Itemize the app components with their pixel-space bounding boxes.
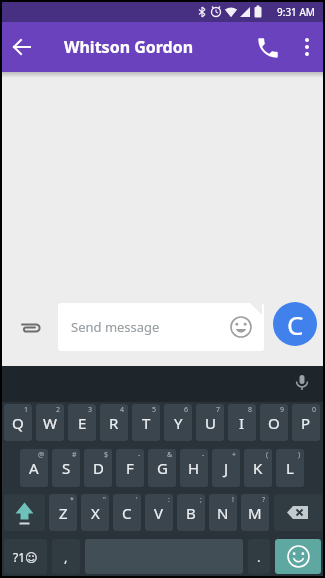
- staticText: 5: [152, 405, 157, 415]
- staticText: 1: [24, 405, 29, 415]
- button[interactable]: [293, 32, 321, 62]
- staticText: #: [72, 450, 77, 460]
- button[interactable]: S: [52, 449, 80, 487]
- staticText: (: [266, 450, 269, 460]
- button[interactable]: U: [196, 404, 224, 441]
- staticText: I: [239, 413, 245, 433]
- button[interactable]: R: [100, 404, 128, 441]
- staticText: P: [301, 413, 311, 433]
- staticText: R: [109, 413, 119, 433]
- button[interactable]: [274, 494, 322, 531]
- staticText: :: [168, 495, 170, 505]
- staticText: C: [122, 503, 132, 523]
- staticText: T: [142, 413, 151, 433]
- button[interactable]: L: [276, 449, 304, 487]
- button[interactable]: G: [148, 449, 176, 487]
- button[interactable]: D: [84, 449, 112, 487]
- staticText: J: [224, 458, 229, 478]
- staticText: G: [157, 458, 168, 478]
- button[interactable]: B: [177, 494, 205, 531]
- staticText: 6: [184, 405, 189, 415]
- button[interactable]: H: [180, 449, 208, 487]
- button[interactable]: M: [241, 494, 269, 531]
- staticText: *: [70, 495, 74, 505]
- staticText: L: [286, 458, 294, 478]
- staticText: ": [103, 495, 106, 505]
- button[interactable]: [275, 539, 321, 574]
- button[interactable]: Y: [164, 404, 192, 441]
- button[interactable]: ?1☺: [4, 539, 47, 574]
- button[interactable]: [8, 33, 36, 61]
- button[interactable]: Z: [49, 494, 77, 531]
- button[interactable]: K: [244, 449, 272, 487]
- staticText: U: [205, 413, 216, 433]
- button[interactable]: [18, 315, 44, 341]
- staticText: N: [217, 503, 229, 523]
- button[interactable]: [4, 494, 45, 531]
- staticText: Y: [174, 413, 183, 433]
- staticText: ,: [64, 548, 68, 566]
- staticText: V: [154, 503, 164, 523]
- staticText: $: [104, 450, 109, 460]
- staticText: -: [202, 450, 205, 460]
- button[interactable]: P: [292, 404, 320, 441]
- staticText: K: [253, 458, 263, 478]
- button[interactable]: C: [113, 494, 141, 531]
- staticText: B: [186, 503, 196, 523]
- button[interactable]: W: [36, 404, 64, 441]
- staticText: 2: [56, 405, 61, 415]
- button[interactable]: A: [20, 449, 48, 487]
- staticText: +: [232, 450, 237, 460]
- staticText: S: [62, 458, 71, 478]
- staticText: &: [167, 450, 173, 460]
- staticText: O: [268, 413, 280, 433]
- staticText: W: [43, 413, 57, 433]
- button[interactable]: J: [212, 449, 240, 487]
- button[interactable]: F: [116, 449, 144, 487]
- staticText: D: [93, 458, 104, 478]
- button[interactable]: C: [273, 302, 317, 346]
- staticText: E: [78, 413, 87, 433]
- staticText: ): [298, 450, 301, 460]
- staticText: 7: [216, 405, 221, 415]
- staticText: A: [29, 458, 39, 478]
- staticText: 0: [312, 405, 317, 415]
- staticText: ': [136, 495, 138, 505]
- button[interactable]: T: [132, 404, 160, 441]
- button[interactable]: ,: [52, 539, 80, 574]
- staticText: Send message: [71, 318, 160, 336]
- staticText: C: [287, 307, 304, 342]
- staticText: X: [91, 503, 100, 523]
- button[interactable]: Q: [4, 404, 32, 441]
- staticText: 9:31 AM: [277, 5, 315, 19]
- staticText: !: [232, 495, 234, 505]
- staticText: H: [188, 458, 200, 478]
- staticText: M: [248, 503, 262, 523]
- staticText: ?1☺: [13, 549, 38, 565]
- button[interactable]: .: [248, 539, 270, 574]
- staticText: F: [126, 458, 134, 478]
- staticText: 3: [88, 405, 93, 415]
- button[interactable]: Send message: [58, 303, 264, 351]
- button[interactable]: [255, 35, 281, 61]
- staticText: ?: [262, 495, 266, 505]
- button[interactable]: I: [228, 404, 256, 441]
- staticText: Whitson Gordon: [64, 36, 194, 58]
- staticText: .: [257, 548, 261, 566]
- button[interactable]: N: [209, 494, 237, 531]
- staticText: 9: [280, 405, 285, 415]
- staticText: @: [38, 450, 45, 460]
- staticText: 4: [120, 405, 125, 415]
- staticText: ;: [200, 495, 202, 505]
- staticText: Q: [12, 413, 24, 433]
- staticText: Z: [59, 503, 68, 523]
- staticText: 8: [248, 405, 253, 415]
- button[interactable]: X: [81, 494, 109, 531]
- staticText: -: [138, 450, 141, 460]
- button[interactable]: E: [68, 404, 96, 441]
- button[interactable]: V: [145, 494, 173, 531]
- button[interactable]: O: [260, 404, 288, 441]
